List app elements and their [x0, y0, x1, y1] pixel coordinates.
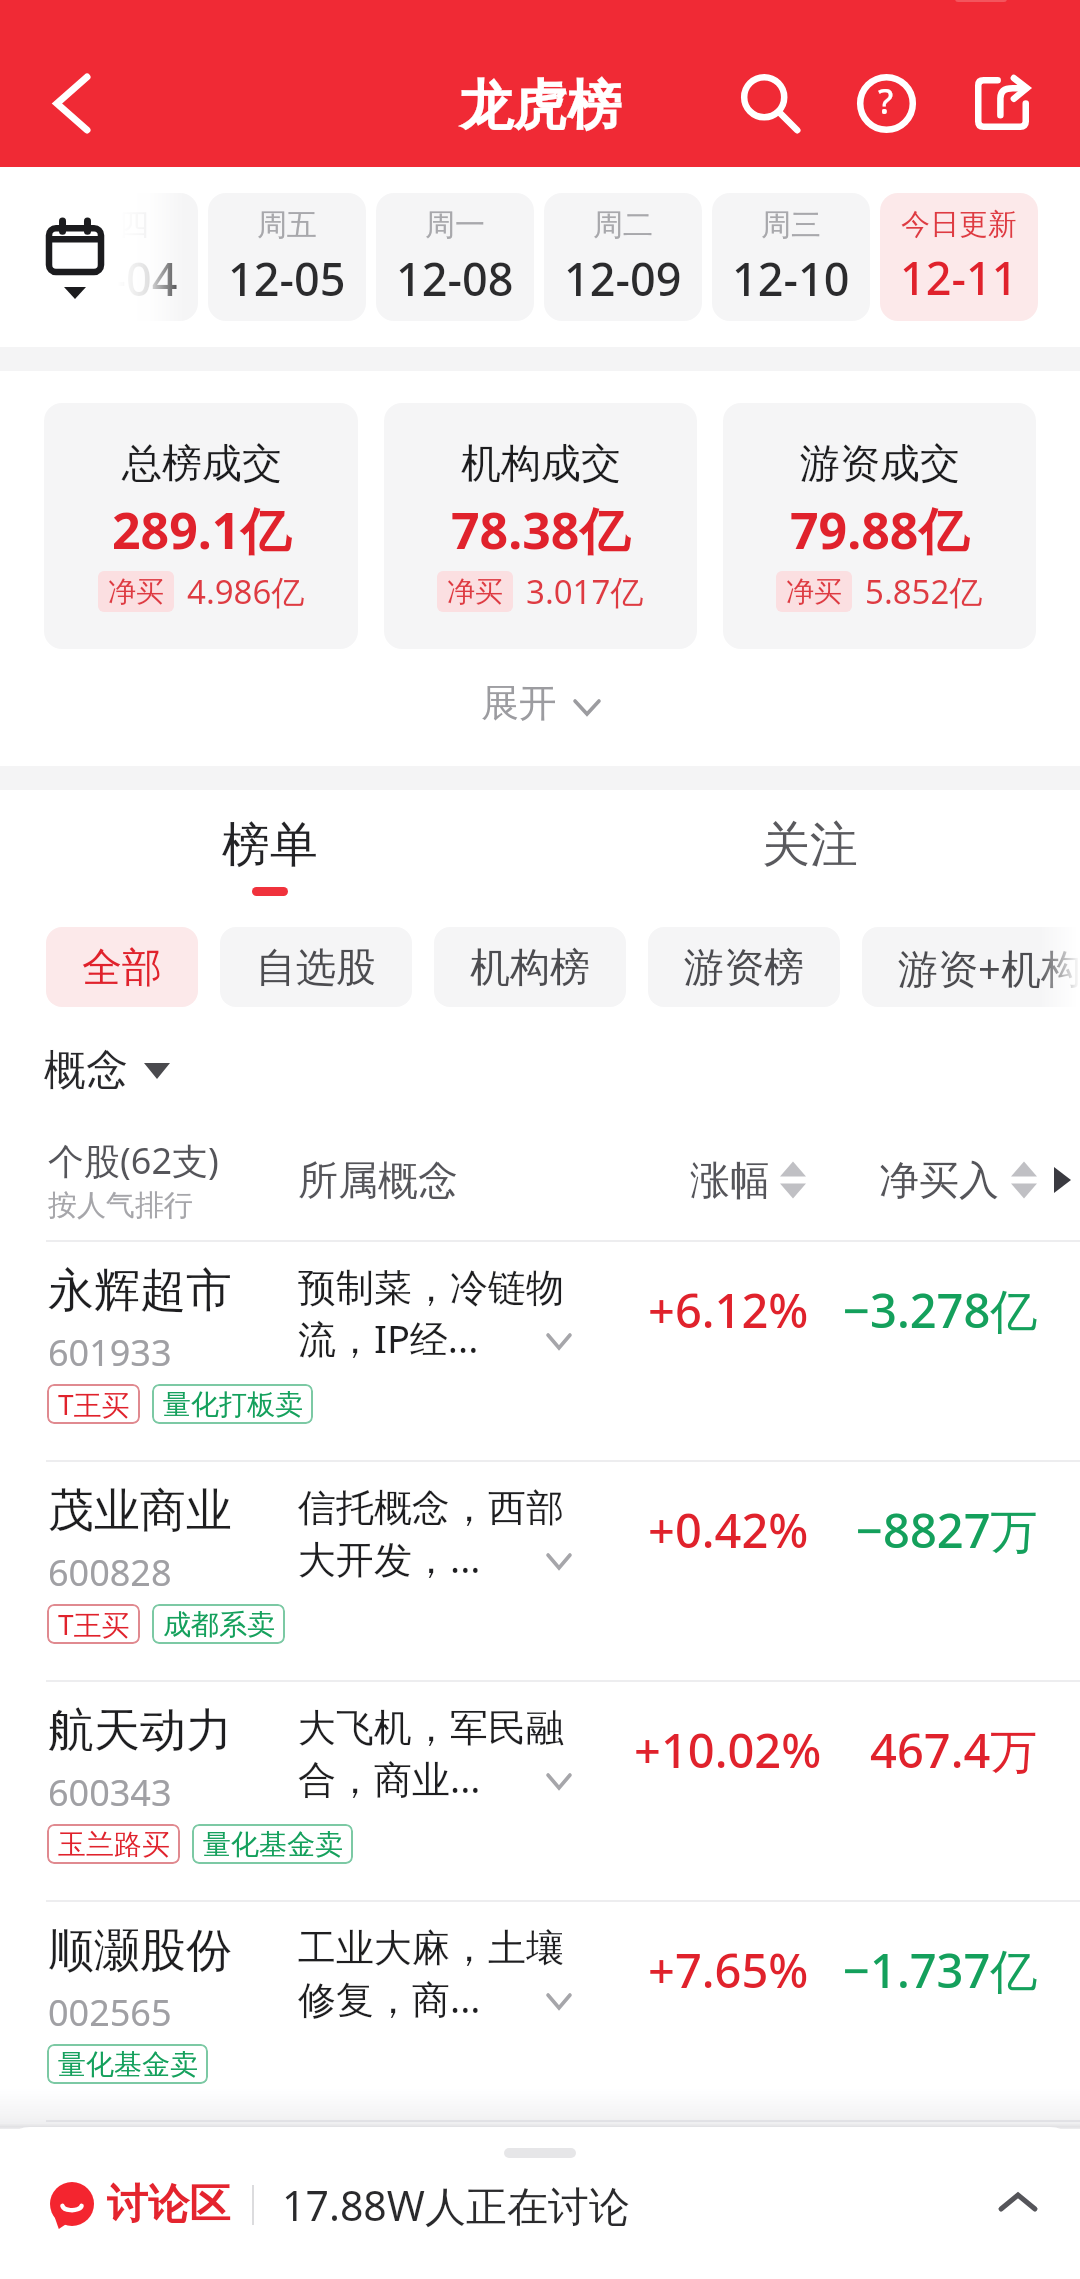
staticText: 概念 [44, 1044, 128, 1097]
staticText: −8827万 [856, 1498, 1038, 1562]
staticText: 龙虎榜 [459, 72, 621, 140]
staticText: 按人气排行 [48, 1187, 193, 1224]
button[interactable]: Expand [980, 2173, 1056, 2231]
button[interactable]: 讨论区 [0, 2127, 1080, 2279]
staticText: 002565 [48, 1988, 172, 2037]
staticText: 预制菜，冷链物 [298, 1264, 564, 1312]
staticText: 机构成交 [461, 438, 621, 488]
button[interactable]: 游资榜 [648, 927, 840, 1007]
staticText: 流，IP经... [298, 1312, 479, 1364]
staticText: 大开发，... [298, 1532, 481, 1584]
staticText: ? [878, 78, 894, 124]
button[interactable]: 展开 [0, 649, 1080, 766]
button[interactable]: 顺灏股份 [0, 1900, 1080, 2120]
button[interactable]: 茂业商业 [0, 1460, 1080, 1680]
staticText: +10.02% [634, 1718, 822, 1782]
staticText: 周四 [89, 206, 149, 244]
staticText: 周三 [761, 206, 821, 244]
staticText: 成都系卖 [163, 1607, 275, 1642]
staticText: 游资榜 [684, 942, 804, 992]
staticText: 个股(62支) [48, 1136, 219, 1185]
staticText: 周五 [257, 206, 317, 244]
staticText: 17.88W人正在讨论 [282, 2177, 630, 2233]
staticText: 榜单 [222, 815, 318, 875]
staticText: 讨论区 [107, 2179, 230, 2231]
staticText: 游资+机构 [898, 940, 1080, 995]
staticText: 自选股 [256, 942, 376, 992]
staticText: T王买 [58, 1605, 130, 1643]
button[interactable]: 周四 [40, 193, 198, 321]
staticText: 今日更新 [901, 206, 1017, 243]
staticText: +7.65% [648, 1938, 809, 2002]
staticText: 12-04 [60, 248, 178, 309]
button[interactable]: 机构成交 [384, 403, 697, 649]
staticText: −1.737亿 [843, 1938, 1038, 2002]
staticText: 大飞机，军民融 [298, 1704, 564, 1752]
staticText: 永辉超市 [48, 1262, 232, 1320]
button[interactable]: Help [840, 57, 932, 149]
staticText: T王买 [58, 1385, 130, 1423]
staticText: 600828 [48, 1548, 172, 1597]
staticText: 净买 [447, 574, 503, 609]
staticText: 净买入 [879, 1155, 999, 1205]
button[interactable]: 航天动力 [0, 1680, 1080, 1900]
button[interactable]: 总榜成交 [44, 403, 358, 649]
staticText: 467.4万 [870, 1718, 1038, 1782]
button[interactable]: 周二 [544, 193, 702, 321]
button[interactable]: Search [724, 57, 816, 149]
button[interactable]: 周五 [208, 193, 366, 321]
staticText: 净买 [108, 574, 164, 609]
staticText: 关注 [762, 815, 858, 875]
button[interactable]: 关注 [540, 790, 1080, 920]
button[interactable]: Share [956, 57, 1048, 149]
staticText: 顺灏股份 [48, 1922, 232, 1980]
button[interactable]: 游资成交 [723, 403, 1036, 649]
staticText: 工业大麻，土壤 [298, 1924, 564, 1972]
button[interactable]: 游资+机构 [862, 927, 1080, 1007]
staticText: 量化打板卖 [163, 1387, 303, 1422]
button[interactable]: 全部 [46, 927, 198, 1007]
staticText: 601933 [48, 1328, 172, 1377]
staticText: 4.986亿 [187, 569, 305, 614]
staticText: 12-10 [732, 248, 850, 309]
staticText: 玉兰路买 [58, 1827, 170, 1862]
staticText: 展开 [481, 679, 557, 727]
button[interactable]: 概念 [44, 1044, 170, 1097]
staticText: 所属概念 [298, 1155, 458, 1205]
staticText: +6.12% [648, 1278, 809, 1342]
staticText: 12-08 [396, 248, 514, 309]
button[interactable]: Calendar [12, 182, 138, 332]
staticText: 600343 [48, 1768, 172, 1817]
staticText: +0.42% [648, 1498, 809, 1562]
button[interactable]: 永辉超市 [0, 1240, 1080, 1460]
staticText: 茂业商业 [48, 1482, 232, 1540]
staticText: 量化基金卖 [58, 2047, 198, 2082]
staticText: 信托概念，西部 [298, 1484, 564, 1532]
staticText: 12-05 [228, 248, 346, 309]
button[interactable]: 周一 [376, 193, 534, 321]
staticText: 净买 [786, 574, 842, 609]
staticText: 航天动力 [48, 1702, 232, 1760]
staticText: 量化基金卖 [203, 1827, 343, 1862]
staticText: 5.852亿 [865, 569, 983, 614]
staticText: 全部 [82, 942, 162, 992]
staticText: 游资成交 [800, 438, 960, 488]
staticText: 12-11 [900, 247, 1018, 308]
button[interactable]: 榜单 [0, 790, 540, 920]
staticText: 修复，商... [298, 1972, 481, 2024]
staticText: 涨幅 [690, 1155, 770, 1205]
button[interactable]: 周三 [712, 193, 870, 321]
staticText: 周二 [593, 206, 653, 244]
button[interactable]: 今日更新 [880, 193, 1038, 321]
staticText: 12-09 [564, 248, 682, 309]
staticText: 合，商业... [298, 1752, 481, 1804]
staticText: 79.88亿 [790, 496, 969, 564]
button[interactable]: Back [26, 57, 118, 149]
button[interactable]: 机构榜 [434, 927, 626, 1007]
staticText: 周一 [425, 206, 485, 244]
staticText: 289.1亿 [112, 496, 291, 564]
staticText: 机构榜 [470, 942, 590, 992]
staticText: 3.017亿 [526, 569, 644, 614]
staticText: −3.278亿 [843, 1278, 1038, 1342]
button[interactable]: 自选股 [220, 927, 412, 1007]
